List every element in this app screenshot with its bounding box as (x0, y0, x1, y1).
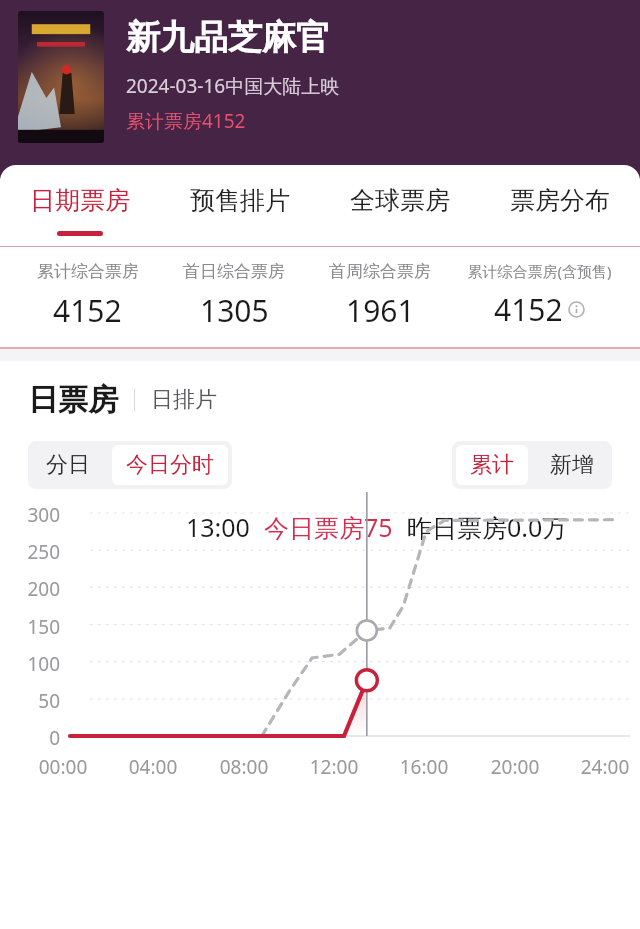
button[interactable]: 日期票房 (0, 165, 160, 247)
staticText: 08:00 (204, 754, 284, 780)
button[interactable]: 累计 (456, 445, 528, 485)
staticText: 13:00 (186, 510, 250, 544)
staticText: 00:00 (23, 754, 103, 780)
staticText: 日排片 (151, 386, 217, 414)
staticText: 累计票房4152 (126, 108, 246, 134)
button[interactable]: 日票房 (28, 381, 118, 419)
staticText: 250 (0, 539, 60, 565)
button[interactable]: 说明 (568, 301, 585, 318)
staticText: 日期票房 (30, 185, 130, 216)
staticText: 100 (0, 651, 60, 677)
staticText: 全球票房 (350, 185, 450, 216)
staticText: 04:00 (113, 754, 193, 780)
staticText: 新增 (550, 451, 594, 479)
staticText: 1961 (346, 290, 415, 331)
staticText: 20:00 (475, 754, 555, 780)
staticText: 首日综合票房 (183, 261, 285, 282)
staticText: 1305 (200, 290, 269, 331)
staticText: 预售排片 (190, 185, 290, 216)
staticText: 累计 (470, 451, 514, 479)
staticText: 票房分布 (510, 185, 610, 216)
staticText: 4152 (494, 289, 563, 330)
staticText: 150 (0, 614, 60, 640)
button[interactable]: 新增 (536, 445, 608, 485)
button[interactable]: 今日分时 (112, 445, 228, 485)
staticText: 新九品芝麻官 (126, 16, 330, 59)
button[interactable]: 全球票房 (320, 165, 480, 247)
staticText: 今日票房75 (264, 510, 393, 544)
staticText: 16:00 (384, 754, 464, 780)
staticText: 300 (0, 502, 60, 528)
button[interactable]: 日排片 (151, 386, 217, 414)
staticText: 日票房 (28, 381, 118, 419)
staticText: 今日分时 (126, 451, 214, 479)
staticText: 累计综合票房 (37, 261, 139, 282)
staticText: 分日 (46, 451, 90, 479)
staticText: 200 (0, 576, 60, 602)
button[interactable]: 票房分布 (480, 165, 640, 247)
button[interactable]: 预售排片 (160, 165, 320, 247)
staticText: 4152 (53, 290, 122, 331)
staticText: 昨日票房0.0万 (407, 510, 568, 544)
button[interactable]: 分日 (32, 445, 104, 485)
staticText: 50 (0, 688, 60, 714)
staticText: 首周综合票房 (329, 261, 431, 282)
staticText: 0 (0, 725, 60, 751)
staticText: 24:00 (565, 754, 640, 780)
staticText: 累计综合票房(含预售) (467, 261, 612, 281)
staticText: 12:00 (294, 754, 374, 780)
staticText: 2024-03-16中国大陆上映 (126, 73, 340, 99)
